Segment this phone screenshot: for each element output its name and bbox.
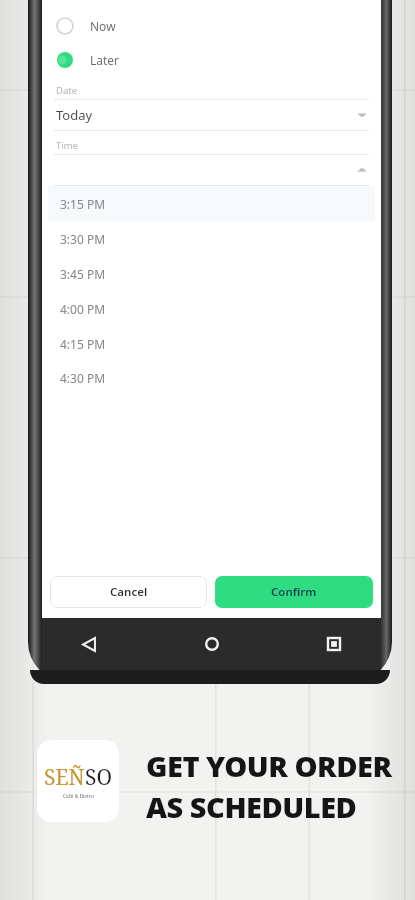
staticText: AS SCHEDULED (146, 787, 357, 826)
staticText: 4:30 PM (60, 370, 106, 386)
staticText: GET YOUR ORDER (146, 746, 392, 785)
button[interactable]: 4:00 PM (48, 291, 375, 326)
staticText: Time (56, 139, 78, 152)
button[interactable]: Cancel (50, 576, 207, 608)
staticText: SEÑ (44, 763, 85, 792)
button[interactable]: Today (42, 99, 381, 131)
button[interactable]: 3:45 PM (48, 256, 375, 291)
staticText: 4:00 PM (60, 301, 106, 317)
button[interactable]: 3:15 PM (48, 186, 375, 221)
button[interactable]: Confirm (215, 576, 373, 608)
button[interactable]: Back (76, 631, 102, 657)
staticText: Later (90, 52, 120, 68)
staticText: Today (56, 106, 93, 124)
staticText: Date (56, 84, 78, 97)
staticText: 3:15 PM (60, 196, 106, 212)
staticText: Café & Bistro (63, 793, 94, 800)
staticText: Now (90, 18, 116, 34)
button[interactable]: Senso Cafe & Bistro logo (37, 740, 119, 822)
button[interactable]: Later (42, 46, 381, 74)
staticText: 3:30 PM (60, 231, 106, 247)
staticText: Cancel (110, 584, 148, 600)
button[interactable]: Now (42, 12, 381, 40)
staticText: 3:45 PM (60, 266, 106, 282)
button[interactable]: 4:30 PM (48, 361, 375, 394)
staticText: 4:15 PM (60, 336, 106, 352)
button[interactable] (42, 154, 381, 186)
button[interactable]: Recent apps (321, 631, 347, 657)
button[interactable]: Home (199, 631, 225, 657)
staticText: SO (85, 763, 113, 792)
button[interactable]: 3:30 PM (48, 221, 375, 256)
staticText: Confirm (271, 584, 317, 600)
button[interactable]: 4:15 PM (48, 326, 375, 361)
